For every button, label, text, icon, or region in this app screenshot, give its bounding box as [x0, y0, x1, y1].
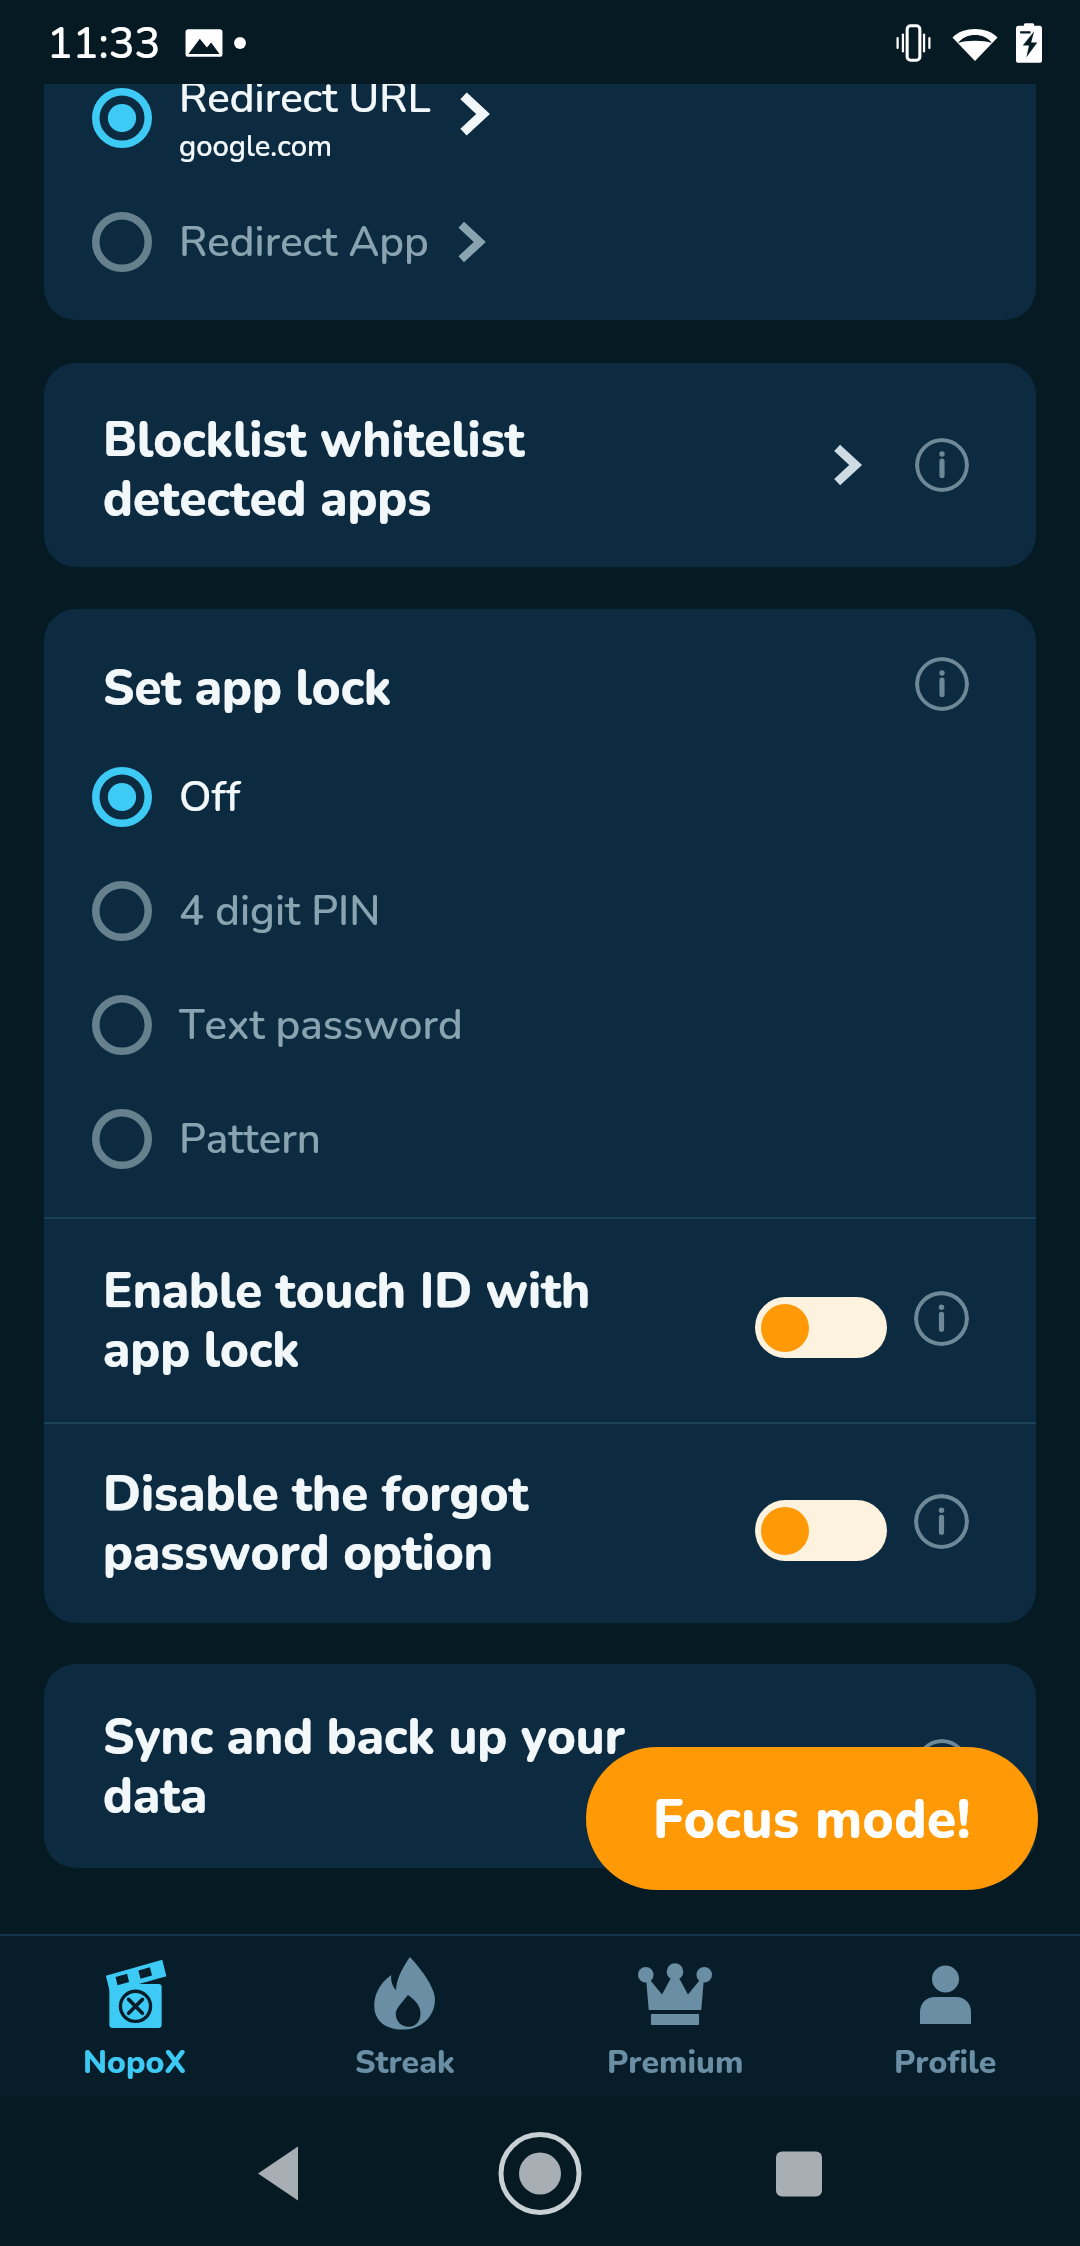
button[interactable]: Toggle switch	[755, 1500, 887, 1561]
button[interactable]: NopoX	[0, 1936, 270, 2096]
button[interactable]: More information	[915, 1739, 969, 1793]
staticText: Sync and back up your data	[103, 1703, 915, 1830]
staticText: Premium	[607, 2041, 744, 2085]
staticText: 11:33	[47, 15, 161, 74]
button[interactable]: Redirect App	[44, 187, 1036, 297]
staticText: Redirect URL	[179, 84, 431, 127]
staticText: Disable the forgot password option	[103, 1460, 755, 1587]
staticText: Set app lock	[103, 654, 915, 721]
button[interactable]: Profile	[810, 1936, 1080, 2096]
staticText: Streak	[355, 2041, 455, 2085]
button[interactable]: Focus mode!	[586, 1747, 1038, 1890]
staticText: Profile	[894, 2041, 997, 2085]
button[interactable]: Toggle switch	[755, 1297, 887, 1358]
staticText: Focus mode!	[653, 1783, 971, 1855]
button[interactable]: Off	[44, 740, 1036, 854]
button[interactable]: More information	[914, 1494, 969, 1549]
button[interactable]: Premium	[540, 1936, 810, 2096]
staticText: google.com	[179, 127, 333, 167]
staticText: NopoX	[83, 2041, 187, 2085]
button[interactable]: Text password	[44, 968, 1036, 1082]
button[interactable]: Streak	[270, 1936, 540, 2096]
staticText: Pattern	[179, 1111, 321, 1168]
button[interactable]: More information	[914, 1291, 969, 1346]
button[interactable]: Enable touch ID with app lock	[44, 1219, 1036, 1422]
staticText: Off	[179, 769, 241, 826]
button[interactable]: Blocklist whitelist detected apps	[44, 363, 1036, 567]
staticText: 4 digit PIN	[179, 883, 381, 940]
button[interactable]: Redirect URL	[44, 84, 1036, 180]
staticText: Text password	[179, 997, 463, 1054]
button[interactable]: More information	[915, 438, 969, 492]
button[interactable]: Pattern	[44, 1082, 1036, 1196]
button[interactable]: Disable the forgot password option	[44, 1424, 1036, 1623]
staticText: Enable touch ID with app lock	[103, 1257, 755, 1384]
staticText: Redirect App	[179, 214, 429, 271]
button[interactable]: More information	[915, 657, 969, 711]
button[interactable]: Sync and back up your data	[44, 1664, 1036, 1868]
button[interactable]: 4 digit PIN	[44, 854, 1036, 968]
staticText: Blocklist whitelist detected apps	[103, 406, 825, 533]
